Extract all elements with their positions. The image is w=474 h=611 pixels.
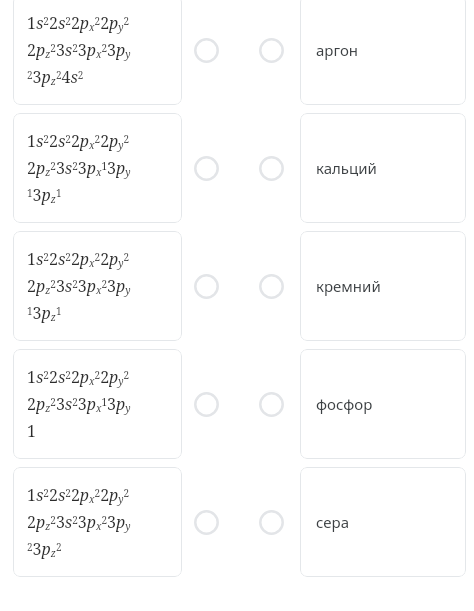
staticText: 1s22s22px22py2 — [27, 12, 130, 34]
button[interactable]: аргон — [300, 0, 466, 105]
button[interactable]: кремний — [300, 231, 466, 341]
button[interactable]: Select left option for сера — [189, 505, 223, 539]
staticText: 2pz23s23px23py — [27, 511, 131, 533]
staticText: 1s22s22px22py2 — [27, 484, 130, 506]
button[interactable]: Select left option for кремний — [189, 269, 223, 303]
button[interactable]: фосфор — [300, 349, 466, 459]
staticText: аргон — [316, 40, 359, 60]
button[interactable]: Select left option for фосфор — [189, 387, 223, 421]
staticText: фосфор — [316, 394, 373, 414]
staticText: 13pz1 — [27, 302, 62, 324]
staticText: 1 — [27, 420, 36, 442]
button[interactable]: сера — [300, 467, 466, 577]
button[interactable]: Select left option for аргон — [189, 33, 223, 67]
button[interactable]: Select right option for фосфор — [254, 387, 288, 421]
button[interactable]: кальций — [300, 113, 466, 223]
staticText: 1s22s22px22py2 — [27, 366, 130, 388]
button[interactable]: Select right option for кремний — [254, 269, 288, 303]
button[interactable]: 1s22s22px22py2 — [13, 113, 182, 223]
button[interactable]: 1s22s22px22py2 — [13, 231, 182, 341]
staticText: 23pz24s2 — [27, 66, 84, 88]
button[interactable]: 1s22s22px22py2 — [13, 467, 182, 577]
button[interactable]: Select right option for сера — [254, 505, 288, 539]
staticText: 1s22s22px22py2 — [27, 130, 130, 152]
staticText: 2pz23s23px13py — [27, 393, 131, 415]
staticText: 13pz1 — [27, 184, 62, 206]
staticText: 2pz23s23px13py — [27, 157, 131, 179]
staticText: 1s22s22px22py2 — [27, 248, 130, 270]
staticText: сера — [316, 512, 349, 532]
staticText: 2pz23s23px23py — [27, 39, 131, 61]
staticText: кальций — [316, 158, 377, 178]
staticText: 2pz23s23px23py — [27, 275, 131, 297]
button[interactable]: Select right option for аргон — [254, 33, 288, 67]
staticText: 23pz2 — [27, 538, 62, 560]
button[interactable]: 1s22s22px22py2 — [13, 349, 182, 459]
staticText: кремний — [316, 276, 381, 296]
button[interactable]: Select right option for кальций — [254, 151, 288, 185]
button[interactable]: Select left option for кальций — [189, 151, 223, 185]
button[interactable]: 1s22s22px22py2 — [13, 0, 182, 105]
